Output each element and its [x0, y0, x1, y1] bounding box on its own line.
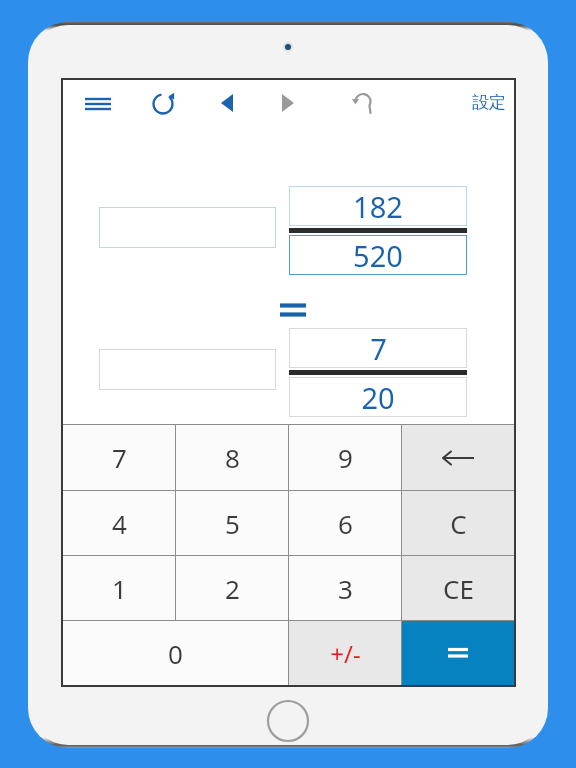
staticText: 182: [353, 187, 403, 226]
button[interactable]: 0: [63, 621, 288, 685]
staticText: 5: [225, 506, 240, 541]
button[interactable]: +/-: [289, 621, 401, 685]
button[interactable]: 7: [289, 328, 467, 368]
staticText: 1: [112, 571, 127, 606]
staticText: 20: [361, 378, 395, 417]
button[interactable]: Redo: [144, 84, 182, 122]
staticText: +/-: [330, 637, 361, 670]
button[interactable]: 520: [289, 235, 467, 275]
button[interactable]: 設定: [461, 80, 516, 124]
button[interactable]: 20: [289, 377, 467, 417]
staticText: 9: [338, 440, 353, 475]
button[interactable]: 1: [63, 556, 175, 620]
button[interactable]: 8: [176, 425, 288, 490]
staticText: 2: [225, 571, 240, 606]
button[interactable]: 3: [289, 556, 401, 620]
button[interactable]: 7: [63, 425, 175, 490]
staticText: 8: [225, 440, 240, 475]
button[interactable]: 2: [176, 556, 288, 620]
button[interactable]: Undo: [344, 84, 382, 122]
button[interactable]: Menu: [80, 86, 116, 122]
button[interactable]: Previous: [208, 84, 246, 122]
staticText: 7: [370, 329, 387, 368]
staticText: 6: [338, 506, 353, 541]
staticText: 520: [353, 236, 403, 275]
button[interactable]: 4: [63, 491, 175, 555]
staticText: C: [450, 506, 467, 541]
button[interactable]: 6: [289, 491, 401, 555]
staticText: CE: [443, 571, 474, 606]
button[interactable]: Next: [269, 84, 307, 122]
staticText: 7: [112, 440, 127, 475]
button[interactable]: 5: [176, 491, 288, 555]
button[interactable]: CE: [402, 556, 514, 620]
button[interactable]: 182: [289, 186, 467, 226]
button[interactable]: C: [402, 491, 514, 555]
staticText: 0: [168, 636, 183, 671]
staticText: 3: [338, 571, 353, 606]
button[interactable]: Equals: [402, 621, 514, 685]
staticText: 4: [112, 506, 127, 541]
button[interactable]: 9: [289, 425, 401, 490]
button[interactable]: Backspace: [402, 425, 514, 490]
staticText: 設定: [472, 92, 506, 113]
button[interactable]: [99, 207, 276, 248]
button[interactable]: [99, 349, 276, 390]
